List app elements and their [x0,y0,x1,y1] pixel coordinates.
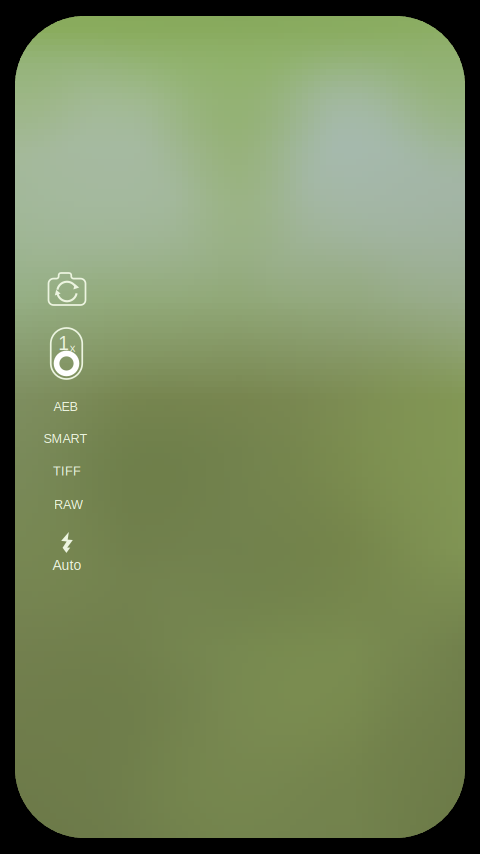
staticText: TIFF [53,464,81,478]
button[interactable]: Flash, Auto [35,530,99,574]
staticText: x [70,341,76,354]
staticText: Auto [52,557,81,573]
button[interactable]: TIFF [30,459,104,483]
button[interactable]: Zoom, 1 times [47,326,85,381]
staticText: 1 [58,332,69,354]
button[interactable]: Switch camera [44,267,90,311]
button[interactable]: SMART [28,426,102,450]
staticText: SMART [43,431,87,446]
staticText: RAW [54,497,83,512]
staticText: AEB [53,399,77,414]
button[interactable]: RAW [31,492,105,516]
button[interactable]: AEB [28,394,102,418]
